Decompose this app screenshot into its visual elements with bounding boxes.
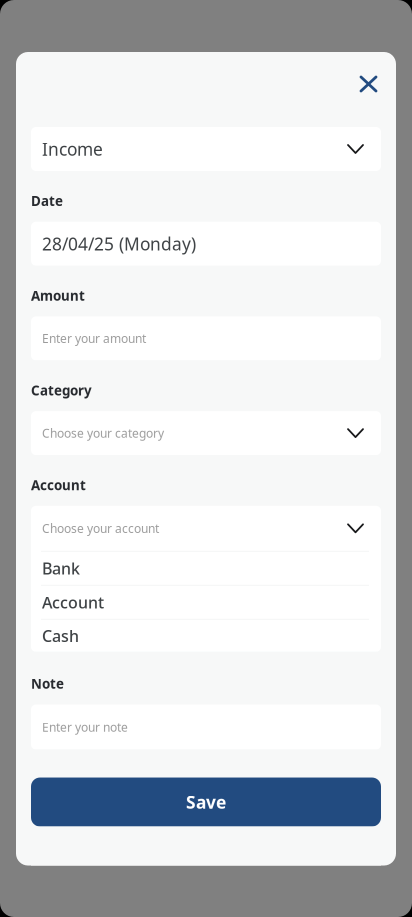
button[interactable]: Account — [31, 586, 381, 619]
button[interactable]: Choose your category — [31, 411, 381, 455]
staticText: Enter your amount — [42, 330, 146, 346]
staticText: Category — [31, 381, 92, 399]
staticText: Bank — [42, 558, 80, 579]
button[interactable]: Cash — [31, 620, 381, 652]
staticText: Amount — [31, 287, 85, 304]
staticText: Account — [42, 592, 104, 613]
button[interactable]: Close — [351, 67, 386, 101]
staticText: Choose your category — [42, 425, 164, 441]
button[interactable]: Enter your amount — [31, 316, 381, 360]
staticText: Enter your note — [42, 719, 128, 735]
button[interactable]: 28/04/25 (Monday) — [31, 222, 381, 266]
staticText: Cash — [42, 625, 79, 646]
button[interactable]: Enter your note — [31, 704, 381, 749]
staticText: Save — [186, 790, 226, 813]
button[interactable]: Bank — [31, 552, 381, 585]
staticText: Income — [42, 137, 103, 160]
staticText: Choose your account — [42, 520, 159, 536]
button[interactable]: Income — [31, 127, 381, 171]
staticText: Note — [31, 675, 64, 692]
staticText: Account — [31, 476, 86, 494]
button[interactable]: Save — [31, 777, 381, 826]
staticText: Date — [31, 192, 63, 210]
button[interactable]: Choose your account — [31, 506, 381, 551]
staticText: 28/04/25 (Monday) — [42, 232, 196, 255]
